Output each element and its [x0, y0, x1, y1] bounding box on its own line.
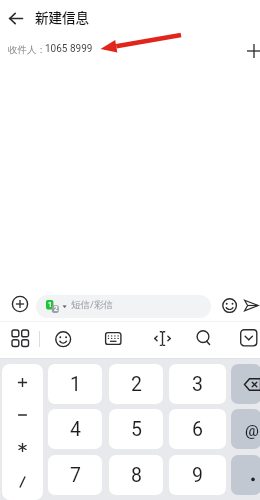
- staticText: 短信/彩信: [71, 299, 113, 311]
- staticText: 5: [131, 418, 142, 441]
- button[interactable]: [243, 296, 260, 315]
- button[interactable]: 4: [48, 409, 102, 449]
- staticText: 6: [192, 418, 203, 441]
- button[interactable]: 2: [109, 364, 163, 404]
- button[interactable]: 8: [109, 455, 163, 495]
- button[interactable]: [237, 326, 260, 350]
- staticText: 1: [48, 300, 53, 309]
- button[interactable]: [2, 431, 43, 464]
- staticText: 1: [70, 373, 81, 396]
- staticText: 8: [131, 464, 142, 487]
- button[interactable]: [51, 326, 75, 351]
- staticText: 2: [54, 305, 58, 313]
- button[interactable]: [101, 326, 126, 350]
- button[interactable]: @: [231, 409, 260, 449]
- staticText: 4: [70, 418, 81, 441]
- button[interactable]: [2, 398, 43, 431]
- staticText: 1065 8999: [45, 43, 93, 55]
- staticText: 9: [192, 464, 203, 487]
- staticText: 收件人：: [8, 44, 46, 56]
- button[interactable]: [9, 293, 30, 314]
- button[interactable]: 3: [169, 364, 226, 404]
- button[interactable]: [2, 364, 43, 398]
- button[interactable]: [221, 297, 238, 314]
- staticText: 3: [192, 373, 203, 396]
- staticText: 新建信息: [35, 7, 89, 27]
- button[interactable]: 6: [169, 409, 226, 449]
- button[interactable]: 5: [109, 409, 163, 449]
- button[interactable]: 1: [48, 364, 102, 404]
- staticText: @: [245, 422, 259, 440]
- button[interactable]: [244, 38, 260, 63]
- button[interactable]: [4, 7, 28, 29]
- button[interactable]: 9: [169, 455, 226, 495]
- button[interactable]: [231, 364, 260, 404]
- button[interactable]: [8, 326, 32, 350]
- button[interactable]: [150, 326, 174, 350]
- staticText: 7: [70, 464, 81, 487]
- button[interactable]: [191, 326, 216, 350]
- button[interactable]: 1: [36, 295, 211, 318]
- button[interactable]: 7: [48, 455, 102, 495]
- button[interactable]: [2, 464, 43, 500]
- staticText: 2: [131, 373, 142, 396]
- button[interactable]: [231, 455, 260, 495]
